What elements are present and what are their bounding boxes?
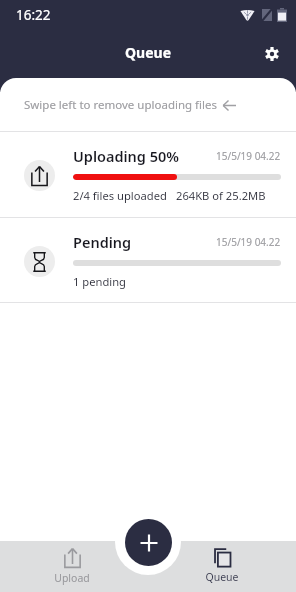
staticText: 15/5/19 04.22 (216, 149, 281, 163)
button[interactable]: Pending (0, 218, 296, 302)
button[interactable]: Settings (257, 39, 287, 69)
button[interactable]: Add (125, 519, 172, 566)
button[interactable]: Queue (193, 548, 251, 584)
staticText: 15/5/19 04.22 (216, 235, 281, 249)
staticText: Pending (73, 232, 132, 252)
button[interactable]: Uploading 50% (0, 132, 296, 217)
staticText: 2/4 files uploaded (73, 188, 167, 203)
staticText: 264KB of 25.2MB (176, 188, 266, 203)
staticText: Queue (125, 43, 171, 62)
staticText: Uploading 50% (73, 146, 179, 166)
staticText: 16:22 (16, 6, 51, 24)
staticText: Upload (54, 571, 90, 585)
staticText: 1 pending (73, 274, 126, 289)
staticText: Swipe left to remove uploading files (24, 97, 217, 113)
staticText: Queue (205, 570, 239, 584)
button[interactable]: Upload (42, 548, 102, 585)
